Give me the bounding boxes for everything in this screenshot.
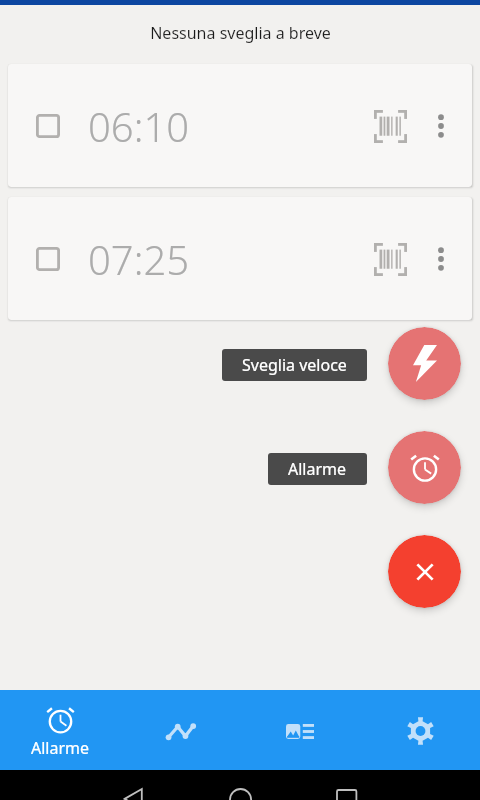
button[interactable]: Sveglia veloce: [388, 327, 461, 400]
button[interactable]: Toggle alarm: [34, 112, 62, 140]
button[interactable]: Toggle alarm: [8, 197, 472, 320]
button[interactable]: Close: [388, 535, 461, 608]
button[interactable]: Statistics: [120, 690, 240, 770]
button[interactable]: Alarms: [0, 690, 120, 770]
button[interactable]: Scan barcode: [370, 239, 410, 279]
staticText: Nessuna sveglia a breve: [150, 22, 331, 44]
button[interactable]: More options: [422, 107, 460, 145]
button[interactable]: More options: [422, 240, 460, 278]
button[interactable]: Toggle alarm: [34, 245, 62, 273]
other: Back: [122, 778, 144, 800]
staticText: Allarme: [288, 458, 347, 480]
button[interactable]: Gallery: [240, 690, 360, 770]
button[interactable]: Settings: [360, 690, 480, 770]
staticText: Sveglia veloce: [242, 354, 347, 376]
staticText: 07:25: [88, 232, 190, 286]
button[interactable]: Sveglia veloce: [222, 349, 367, 381]
button[interactable]: Allarme: [268, 453, 367, 485]
button[interactable]: Allarme: [388, 431, 461, 504]
other: Home: [230, 778, 252, 800]
other: Recents: [337, 779, 357, 799]
button[interactable]: Toggle alarm: [8, 64, 472, 187]
button[interactable]: Scan barcode: [370, 106, 410, 146]
staticText: Allarme: [31, 737, 90, 759]
staticText: 06:10: [88, 99, 190, 153]
